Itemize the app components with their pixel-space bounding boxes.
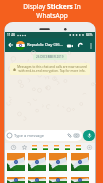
button[interactable]: Sticker <box>69 153 91 171</box>
button[interactable]: Sticker pack 1 <box>31 144 37 150</box>
button[interactable]: Video call <box>65 41 74 50</box>
button[interactable]: Sticker <box>26 177 47 183</box>
staticText: Display Stickers In <box>23 2 81 11</box>
button[interactable]: Starred <box>21 144 27 150</box>
staticText: Republic Day (36... <box>27 42 64 48</box>
button[interactable]: Sticker pack 2 <box>42 144 48 150</box>
button[interactable]: Sticker <box>47 153 69 171</box>
staticText: WhatsApp <box>36 11 68 20</box>
button[interactable]: Sticker pack 5 <box>75 144 81 150</box>
button[interactable]: Sticker pack 3 <box>53 144 59 150</box>
button[interactable]: Messages to this chat and calls are now … <box>10 63 90 75</box>
staticText: 84% <box>86 33 93 37</box>
button[interactable]: More options <box>87 42 94 49</box>
button[interactable]: Send voice message <box>83 130 95 141</box>
staticText: 11:26 <box>7 33 16 37</box>
button[interactable]: Add stickers <box>86 144 92 150</box>
button[interactable]: Back <box>7 41 15 49</box>
button[interactable]: Sticker <box>5 153 26 171</box>
button[interactable]: Sticker <box>69 177 91 183</box>
button[interactable]: Sticker <box>5 177 26 183</box>
staticText: Type a message <box>14 133 45 138</box>
staticText: 26 DECEMBER 2019 <box>36 55 64 59</box>
button[interactable]: Type a message <box>5 130 82 141</box>
button[interactable]: Sticker pack 4 <box>64 144 70 150</box>
button[interactable]: Sticker <box>26 153 47 171</box>
staticText: Messages to this chat and calls are now … <box>17 65 87 73</box>
button[interactable]: Sticker <box>47 177 69 183</box>
button[interactable]: Recent <box>10 144 16 150</box>
button[interactable]: Call <box>76 41 85 50</box>
